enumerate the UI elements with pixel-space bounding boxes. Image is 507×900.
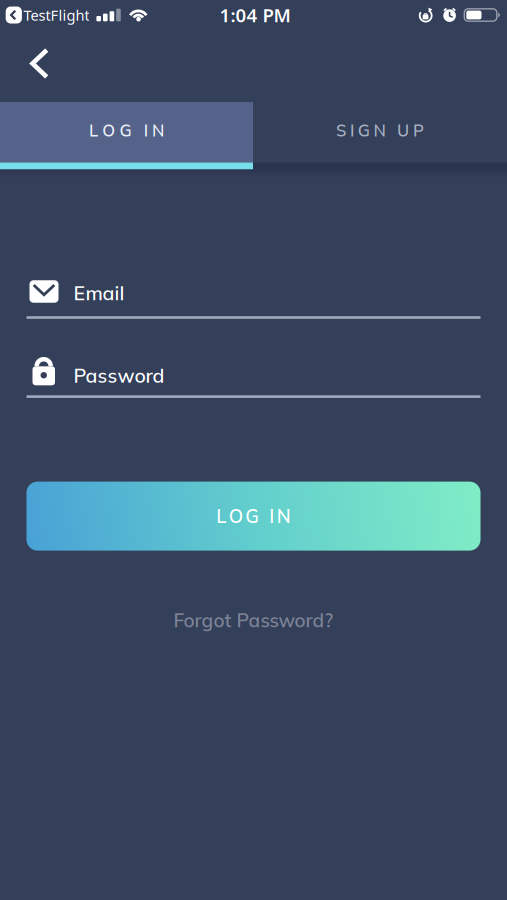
staticText: O	[229, 504, 243, 528]
staticText: L	[89, 120, 98, 141]
staticText: L	[216, 504, 226, 528]
staticText: Forgot Password?	[173, 608, 333, 632]
staticText: U	[397, 120, 409, 141]
button[interactable]: L	[0, 102, 253, 162]
staticText: I	[269, 504, 274, 528]
button[interactable]	[0, 45, 48, 87]
staticText: O	[102, 120, 115, 141]
staticText: S	[336, 120, 346, 141]
button[interactable]: L	[26, 482, 480, 551]
button[interactable]: S	[253, 102, 507, 162]
staticText: G	[119, 120, 131, 141]
staticText: N	[152, 120, 164, 141]
button[interactable]: Email	[0, 280, 507, 319]
staticText: I	[350, 120, 354, 141]
button[interactable]: Forgot Password?	[173, 608, 333, 632]
button[interactable]: Password	[0, 355, 507, 398]
staticText: TestFlight	[23, 5, 89, 25]
staticText: Password	[73, 363, 164, 388]
staticText: I	[144, 120, 148, 141]
staticText: 1:04 PM	[219, 3, 290, 27]
staticText: N	[373, 120, 385, 141]
staticText: G	[358, 120, 370, 141]
staticText: Email	[73, 281, 124, 305]
staticText: G	[245, 504, 259, 528]
staticText: P	[413, 120, 424, 141]
staticText: N	[277, 504, 291, 528]
